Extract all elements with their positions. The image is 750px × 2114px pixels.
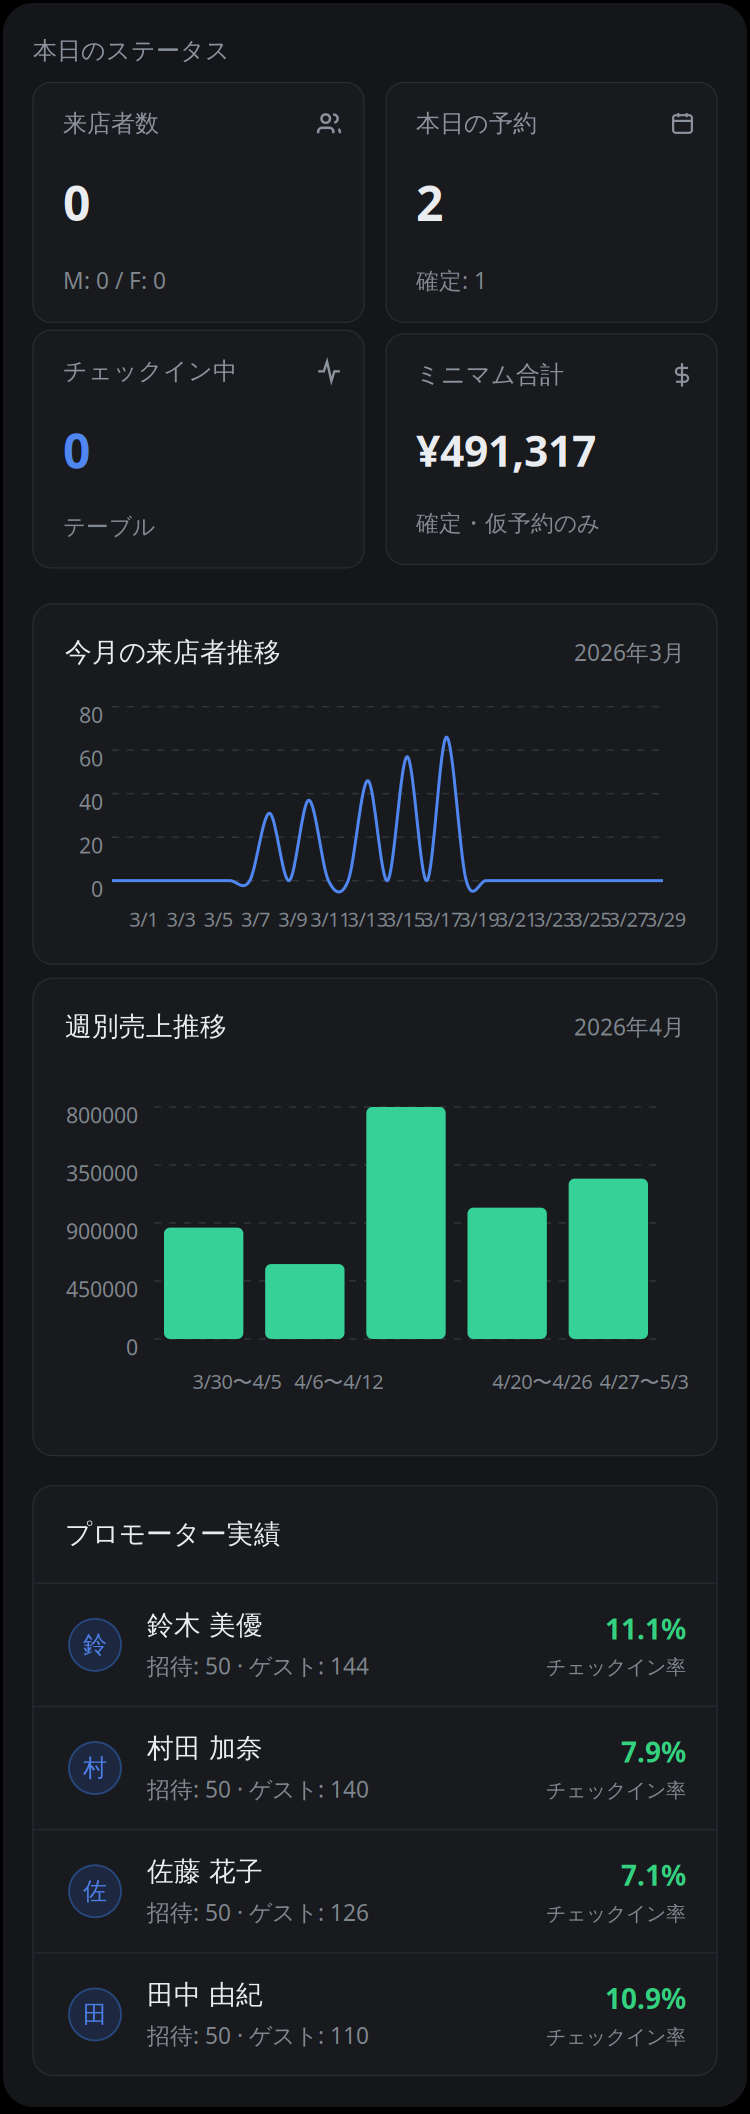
staticText: 佐藤 花子 bbox=[147, 1855, 263, 1888]
staticText: 今月の来店者推移 bbox=[65, 636, 281, 669]
staticText: 招待: 50 · ゲスト: 110 bbox=[147, 2020, 369, 2050]
staticText: 本日の予約 bbox=[416, 109, 537, 138]
staticText: 村 bbox=[83, 1753, 107, 1783]
button[interactable]: 本日の予約 bbox=[386, 82, 717, 322]
staticText: 田 bbox=[83, 2000, 107, 2029]
staticText: 4/20〜4/26 bbox=[492, 1368, 592, 1395]
staticText: 2 bbox=[416, 170, 443, 234]
button[interactable]: 佐 bbox=[33, 1830, 717, 1952]
staticText: 11.1% bbox=[605, 1610, 686, 1647]
staticText: 鈴 bbox=[83, 1630, 107, 1660]
staticText: ¥491,317 bbox=[416, 422, 596, 479]
button[interactable]: 田 bbox=[33, 1953, 717, 2075]
staticText: 確定・仮予約のみ bbox=[416, 509, 600, 537]
staticText: 20 bbox=[79, 831, 103, 859]
staticText: 60 bbox=[79, 744, 103, 772]
staticText: 350000 bbox=[66, 1159, 138, 1187]
staticText: チェックイン中 bbox=[63, 357, 237, 386]
staticText: 7.9% bbox=[621, 1733, 686, 1770]
staticText: 7.1% bbox=[621, 1856, 686, 1894]
staticText: 40 bbox=[79, 787, 103, 816]
staticText: 招待: 50 · ゲスト: 140 bbox=[147, 1774, 369, 1804]
staticText: 800000 bbox=[66, 1101, 138, 1129]
staticText: 3/21 bbox=[497, 906, 537, 932]
staticText: チェックイン率 bbox=[546, 1655, 686, 1680]
staticText: 0 bbox=[63, 170, 90, 234]
staticText: 3/13 bbox=[347, 906, 387, 932]
staticText: チェックイン率 bbox=[546, 1778, 686, 1803]
staticText: 招待: 50 · ゲスト: 144 bbox=[147, 1651, 369, 1681]
staticText: 0 bbox=[91, 874, 103, 903]
staticText: 3/19 bbox=[459, 906, 499, 932]
staticText: 3/15 bbox=[385, 906, 425, 932]
staticText: 4/27〜5/3 bbox=[600, 1368, 689, 1395]
staticText: 本日のステータス bbox=[33, 36, 230, 65]
staticText: 3/29 bbox=[646, 906, 686, 932]
staticText: チェックイン率 bbox=[546, 1901, 686, 1926]
button[interactable]: ミニマム合計 bbox=[386, 334, 717, 564]
button[interactable]: 鈴 bbox=[33, 1584, 717, 1706]
staticText: 3/1 bbox=[129, 906, 158, 932]
staticText: 80 bbox=[79, 700, 103, 729]
staticText: 来店者数 bbox=[63, 109, 159, 138]
button[interactable]: チェックイン中 bbox=[33, 330, 364, 568]
staticText: 週別売上推移 bbox=[65, 1010, 227, 1043]
staticText: 3/5 bbox=[204, 906, 233, 932]
staticText: テーブル bbox=[63, 513, 155, 541]
staticText: ミニマム合計 bbox=[416, 360, 564, 390]
staticText: 3/25 bbox=[571, 906, 611, 932]
staticText: 0 bbox=[63, 418, 90, 482]
staticText: 3/9 bbox=[278, 906, 307, 932]
staticText: 田中 由紀 bbox=[147, 1978, 263, 2011]
staticText: プロモーター実績 bbox=[65, 1518, 281, 1551]
staticText: 村田 加奈 bbox=[147, 1732, 263, 1765]
button[interactable]: 来店者数 bbox=[33, 82, 364, 322]
staticText: 佐 bbox=[83, 1876, 107, 1906]
staticText: 3/7 bbox=[241, 906, 270, 932]
staticText: 2026年4月 bbox=[574, 1011, 685, 1042]
staticText: 3/3 bbox=[166, 906, 195, 932]
staticText: チェックイン率 bbox=[546, 2025, 686, 2049]
staticText: 3/27 bbox=[609, 906, 649, 932]
staticText: 0 bbox=[126, 1333, 138, 1361]
staticText: 3/30〜4/5 bbox=[192, 1368, 281, 1395]
staticText: 確定: 1 bbox=[416, 265, 487, 295]
staticText: 10.9% bbox=[605, 1980, 686, 2017]
button[interactable]: 村 bbox=[33, 1707, 717, 1829]
staticText: 450000 bbox=[66, 1275, 138, 1303]
staticText: 3/11 bbox=[310, 906, 350, 932]
staticText: 900000 bbox=[66, 1217, 138, 1245]
staticText: M: 0 / F: 0 bbox=[63, 265, 166, 295]
staticText: 4/6〜4/12 bbox=[294, 1368, 383, 1395]
staticText: 3/17 bbox=[422, 906, 462, 932]
staticText: 2026年3月 bbox=[574, 637, 685, 667]
staticText: 3/23 bbox=[534, 906, 574, 932]
staticText: 招待: 50 · ゲスト: 126 bbox=[147, 1897, 369, 1927]
staticText: 鈴木 美優 bbox=[147, 1609, 263, 1642]
